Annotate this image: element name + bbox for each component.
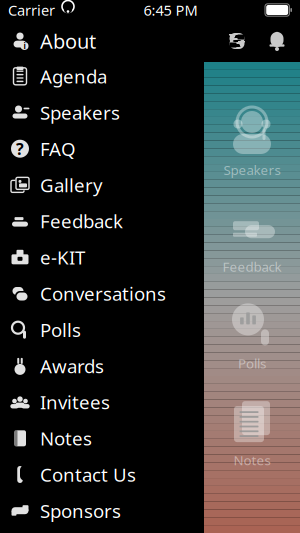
staticText: Agenda: [40, 64, 107, 89]
staticText: Carrier: [8, 0, 55, 20]
button[interactable]: Gallery: [0, 167, 204, 203]
staticText: About: [40, 28, 96, 54]
staticText: Conversations: [40, 281, 166, 306]
button[interactable]: ?: [0, 131, 204, 167]
staticText: 6:45 PM: [143, 0, 197, 20]
button[interactable]: Awards: [0, 348, 204, 384]
button[interactable]: Speakers: [0, 94, 204, 131]
button[interactable]: Feedback: [0, 203, 204, 239]
staticText: Sponsors: [40, 498, 121, 523]
button[interactable]: e-KIT: [0, 239, 204, 275]
staticText: e-KIT: [40, 245, 85, 270]
button[interactable]: Refresh: [225, 29, 249, 53]
button[interactable]: Agenda: [0, 58, 204, 94]
button[interactable]: Contact Us: [0, 456, 204, 493]
staticText: FAQ: [40, 136, 76, 161]
staticText: i: [23, 41, 25, 51]
staticText: Notes: [233, 451, 270, 469]
button[interactable]: Conversations: [0, 275, 204, 312]
button[interactable]: Notes: [0, 420, 204, 456]
staticText: Polls: [238, 354, 266, 372]
staticText: Awards: [40, 353, 104, 378]
staticText: Gallery: [40, 172, 103, 197]
staticText: Speakers: [40, 100, 120, 125]
staticText: Speakers: [223, 161, 280, 179]
staticText: ?: [16, 138, 24, 159]
button[interactable]: Notifications: [265, 29, 289, 53]
staticText: Feedback: [40, 209, 123, 233]
staticText: Contact Us: [40, 462, 136, 487]
staticText: Polls: [40, 317, 81, 342]
staticText: Invitees: [40, 390, 110, 414]
staticText: Feedback: [222, 258, 281, 275]
button[interactable]: Invitees: [0, 384, 204, 420]
staticText: Notes: [40, 426, 92, 451]
button[interactable]: Polls: [0, 312, 204, 348]
button[interactable]: Sponsors: [0, 493, 204, 529]
